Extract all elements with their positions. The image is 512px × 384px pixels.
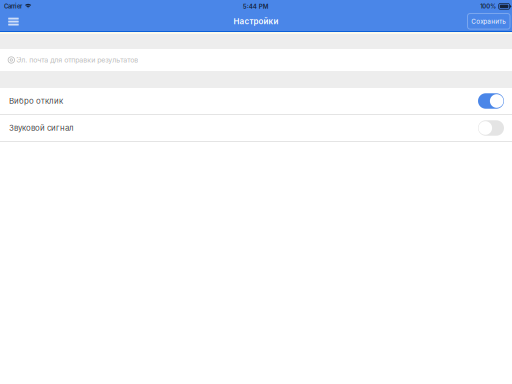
button[interactable]: Вибро отклик [0, 88, 512, 114]
button[interactable]: Сохранить [467, 13, 510, 31]
staticText: Звуковой сигнал [9, 123, 74, 133]
button[interactable]: Эл. почта для отправки результатов [0, 49, 512, 71]
staticText: 5:44 PM [243, 3, 269, 10]
staticText: Настройки [233, 17, 278, 26]
staticText: Carrier [4, 3, 22, 10]
button[interactable]: Menu [0, 15, 26, 30]
staticText: 100% [480, 3, 496, 10]
staticText: Вибро отклик [9, 96, 63, 106]
staticText: Сохранить [471, 17, 506, 25]
staticText: Эл. почта для отправки результатов [16, 56, 138, 64]
button[interactable]: Звуковой сигнал [0, 115, 512, 141]
